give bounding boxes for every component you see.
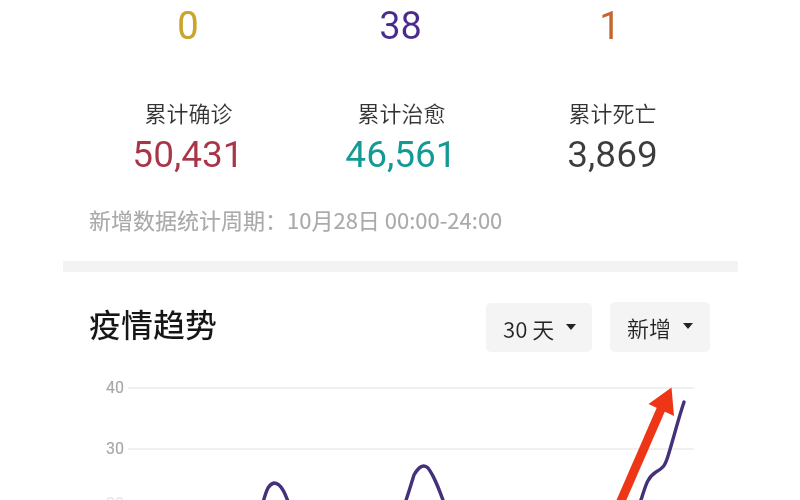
staticText: 累计确诊: [144, 96, 233, 128]
staticText: 新增数据统计周期：10月28日 00:00-24:00: [89, 203, 503, 235]
staticText: 3,869: [567, 133, 658, 176]
staticText: 20: [106, 494, 124, 500]
staticText: 40: [106, 378, 124, 397]
button[interactable]: 新增: [610, 302, 710, 352]
staticText: 疫情趋势: [89, 300, 218, 346]
staticText: 30 天: [503, 312, 555, 344]
staticText: 46,561: [345, 133, 457, 176]
button[interactable]: 30 天: [486, 303, 592, 352]
staticText: 新增: [627, 311, 672, 343]
staticText: 50,431: [132, 133, 244, 176]
staticText: 累计治愈: [357, 96, 446, 128]
staticText: 38: [379, 4, 422, 49]
staticText: 0: [177, 4, 199, 49]
staticText: 1: [599, 4, 621, 49]
staticText: 累计死亡: [568, 96, 657, 128]
staticText: 30: [106, 439, 124, 458]
